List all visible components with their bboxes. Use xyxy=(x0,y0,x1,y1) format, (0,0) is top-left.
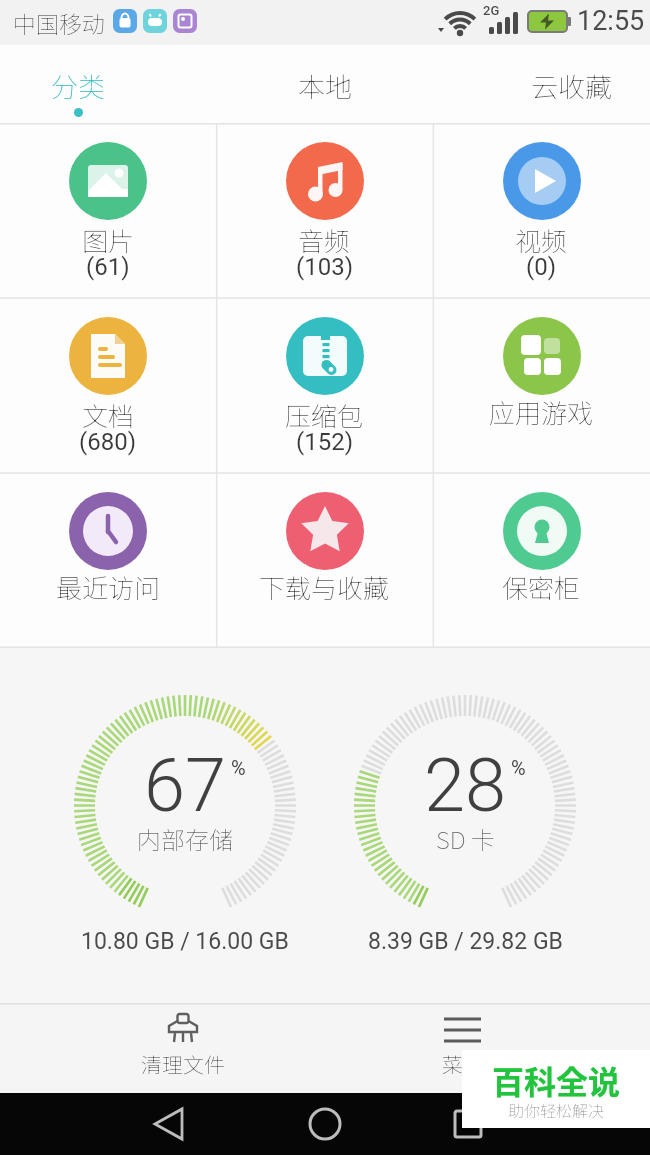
button[interactable]: 文档 xyxy=(0,298,216,473)
staticText: 保密柜 xyxy=(502,568,581,606)
staticText: 10.80 GB / 16.00 GB xyxy=(81,928,289,955)
staticText: 清理文件 xyxy=(141,1049,225,1079)
button[interactable]: 保密柜 xyxy=(433,473,650,648)
button[interactable]: 图片 xyxy=(0,123,216,298)
staticText: % xyxy=(231,756,246,779)
staticText: 图片 xyxy=(82,221,135,259)
staticText: 分类 xyxy=(51,66,105,105)
staticText: (0) xyxy=(526,253,557,281)
staticText: 百科全说 xyxy=(492,1057,621,1103)
button[interactable]: 最近访问 xyxy=(0,473,216,648)
button[interactable] xyxy=(138,1094,198,1154)
button[interactable]: 音频 xyxy=(216,123,433,298)
staticText: 助你轻松解决 xyxy=(508,1098,605,1121)
staticText: 中国移动 xyxy=(13,6,105,39)
staticText: 压缩包 xyxy=(285,396,364,434)
staticText: 2G xyxy=(483,3,500,18)
staticText: 应用游戏 xyxy=(489,393,594,431)
button[interactable]: 清理文件 xyxy=(113,1007,253,1091)
button[interactable]: 视频 xyxy=(433,123,650,298)
staticText: 28 xyxy=(424,742,507,829)
staticText: 本地 xyxy=(298,66,352,105)
button[interactable]: 分类 xyxy=(28,66,128,122)
button[interactable] xyxy=(295,1094,355,1154)
staticText: 音频 xyxy=(298,221,351,259)
staticText: 菜单 xyxy=(442,1049,484,1079)
staticText: 文档 xyxy=(82,396,135,434)
button[interactable]: 下载与收藏 xyxy=(216,473,433,648)
button[interactable] xyxy=(438,1094,498,1154)
button[interactable]: 菜单 xyxy=(393,1007,533,1091)
staticText: SD 卡 xyxy=(436,821,495,856)
staticText: 视频 xyxy=(515,221,568,259)
staticText: (680) xyxy=(79,428,137,456)
staticText: 最近访问 xyxy=(56,568,161,606)
staticText: 内部存储 xyxy=(137,821,233,856)
staticText: 8.39 GB / 29.82 GB xyxy=(368,928,563,955)
button[interactable]: 应用游戏 xyxy=(433,298,650,473)
button[interactable]: 压缩包 xyxy=(216,298,433,473)
staticText: 67 xyxy=(144,742,227,829)
staticText: (103) xyxy=(296,253,354,281)
staticText: 12:55 xyxy=(577,5,645,37)
staticText: % xyxy=(511,756,526,779)
staticText: 云收藏 xyxy=(531,66,612,105)
staticText: (61) xyxy=(86,253,130,281)
staticText: (152) xyxy=(296,428,354,456)
button[interactable]: 本地 xyxy=(275,66,375,122)
button[interactable]: 云收藏 xyxy=(516,66,626,122)
staticText: 下载与收藏 xyxy=(259,568,390,606)
